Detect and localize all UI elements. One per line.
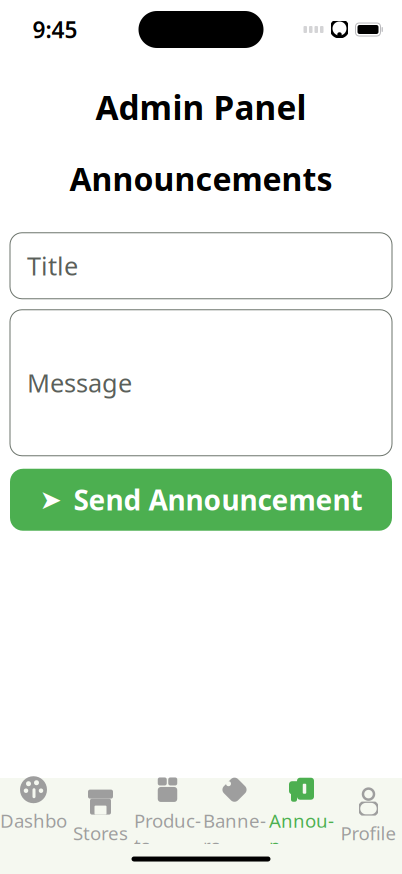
button[interactable]: Profile — [335, 790, 402, 844]
staticText: Profile — [340, 821, 396, 845]
staticText: Dashbo… — [0, 808, 67, 858]
button[interactable]: Dashbo… — [0, 790, 67, 844]
staticText: Announcements — [69, 157, 332, 200]
staticText: Announ… — [269, 808, 334, 858]
button[interactable]: Products — [134, 790, 201, 844]
staticText: Message — [27, 366, 132, 399]
staticText: Title — [27, 249, 78, 282]
staticText: Admin Panel — [95, 85, 306, 129]
staticText: Banners — [203, 808, 266, 858]
staticText: Stores — [73, 821, 128, 845]
button[interactable]: ➤ — [10, 469, 392, 531]
button[interactable]: Announ… — [268, 790, 335, 844]
button[interactable]: Stores — [67, 790, 134, 844]
staticText: Products — [134, 808, 201, 858]
staticText: ➤ — [39, 485, 61, 515]
button[interactable]: Banners — [201, 790, 268, 844]
staticText: 9:45 — [32, 14, 77, 44]
staticText: Send Announcement — [73, 481, 362, 518]
